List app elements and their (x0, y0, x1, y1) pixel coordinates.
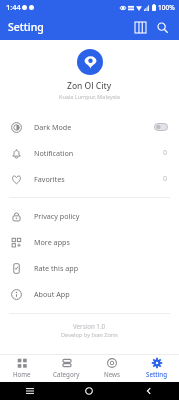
button[interactable]: Back (119, 382, 179, 400)
button[interactable]: Favorites (0, 166, 179, 192)
staticText: Category (53, 370, 80, 378)
button[interactable] (77, 49, 103, 75)
button[interactable]: Recents (0, 382, 59, 400)
staticText: News (104, 370, 120, 378)
staticText: Rate this app (34, 263, 168, 273)
button[interactable]: Dark Mode (0, 114, 179, 140)
button[interactable]: Library (129, 16, 151, 38)
button[interactable]: Category (44, 354, 89, 382)
button[interactable]: Notification (0, 140, 179, 166)
staticText: 0 (163, 148, 168, 158)
staticText: Kuala Lumpur, Malaysia (59, 93, 120, 100)
button[interactable]: Setting (134, 354, 179, 382)
staticText: 1:44 (6, 2, 21, 12)
staticText: Zon Ol City (67, 80, 112, 92)
staticText: Setting (146, 370, 168, 378)
staticText: 100% (158, 3, 175, 12)
staticText: More apps (34, 237, 168, 247)
staticText: Favorites (34, 174, 163, 184)
button[interactable]: Dark Mode toggle (154, 123, 168, 131)
staticText: Version 1.0 (73, 322, 106, 330)
button[interactable]: Home (0, 354, 44, 382)
staticText: About App (34, 289, 168, 299)
staticText: Setting (8, 20, 44, 34)
button[interactable]: Rate this app (0, 255, 179, 281)
button[interactable]: Home (59, 382, 119, 400)
staticText: Notification (34, 148, 163, 158)
staticText: Develop by Ivan Zonn (61, 331, 118, 339)
staticText: Privacy policy (34, 211, 168, 221)
button[interactable]: Privacy policy (0, 203, 179, 229)
staticText: Home (13, 370, 31, 378)
button[interactable]: More apps (0, 229, 179, 255)
button[interactable]: Search (151, 16, 173, 38)
button[interactable]: About App (0, 281, 179, 307)
staticText: Dark Mode (34, 122, 154, 132)
button[interactable]: News (89, 354, 134, 382)
staticText: 0 (163, 174, 168, 184)
